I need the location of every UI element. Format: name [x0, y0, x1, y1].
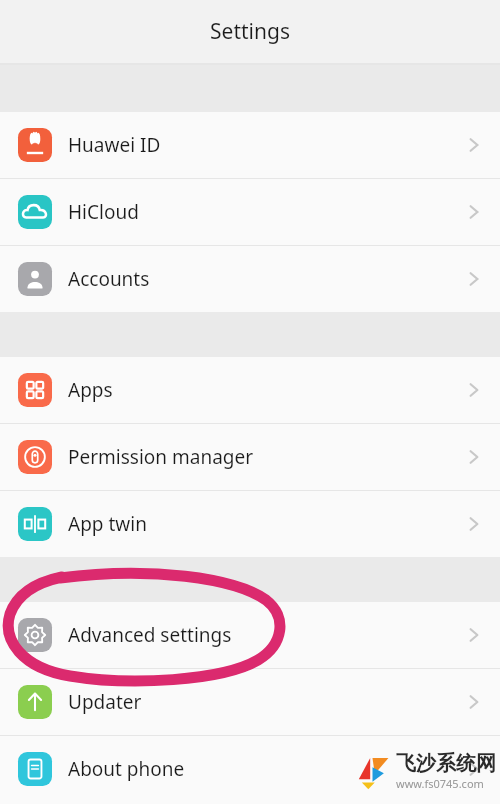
- staticText: 飞沙系统网: [396, 751, 496, 776]
- button[interactable]: Permission manager: [0, 424, 500, 490]
- button[interactable]: Advanced settings: [0, 602, 500, 668]
- staticText: www.fs0745.com: [396, 776, 484, 791]
- staticText: Updater: [68, 689, 462, 715]
- button[interactable]: Updater: [0, 669, 500, 735]
- staticText: App twin: [68, 511, 462, 537]
- staticText: Apps: [68, 377, 462, 403]
- button[interactable]: Accounts: [0, 246, 500, 312]
- button[interactable]: Huawei ID: [0, 112, 500, 178]
- button[interactable]: HiCloud: [0, 179, 500, 245]
- staticText: Accounts: [68, 266, 462, 292]
- button[interactable]: About phone: [0, 736, 500, 802]
- staticText: HiCloud: [68, 199, 462, 225]
- button[interactable]: Apps: [0, 357, 500, 423]
- staticText: Permission manager: [68, 444, 462, 470]
- staticText: Settings: [210, 17, 290, 46]
- staticText: Advanced settings: [68, 622, 462, 648]
- staticText: About phone: [68, 756, 462, 782]
- staticText: Huawei ID: [68, 132, 462, 158]
- button[interactable]: App twin: [0, 491, 500, 557]
